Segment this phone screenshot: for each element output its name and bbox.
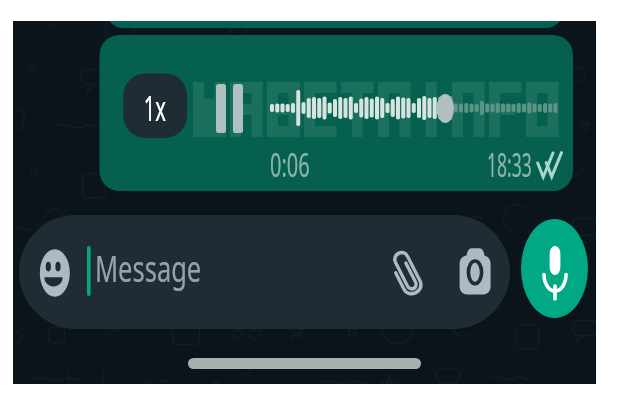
button[interactable]: Camera [452, 244, 500, 300]
button[interactable]: Record voice message [520, 219, 586, 319]
button[interactable]: Emoji [34, 252, 74, 292]
button[interactable]: Pause voice message [205, 75, 260, 140]
button[interactable]: Message input field [19, 215, 510, 329]
button[interactable]: Playback speed 1x [124, 73, 186, 137]
button[interactable]: Attach [386, 244, 434, 300]
